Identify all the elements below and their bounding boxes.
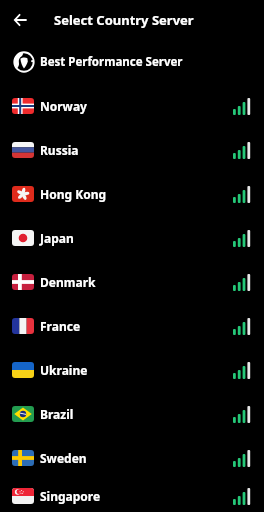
staticText: Best Performance Server [40, 54, 183, 70]
staticText: Japan [40, 230, 74, 246]
button[interactable]: Japan [0, 216, 264, 260]
button[interactable]: Hong Kong [0, 172, 264, 216]
button[interactable]: Denmark [0, 260, 264, 304]
staticText: Brazil [40, 406, 74, 422]
button[interactable]: Best Performance Server [0, 40, 264, 84]
staticText: Select Country Server [54, 11, 194, 29]
staticText: Singapore [40, 488, 101, 504]
button[interactable]: Norway [0, 84, 264, 128]
staticText: Denmark [40, 274, 96, 290]
staticText: France [40, 318, 81, 334]
button[interactable]: Ukraine [0, 348, 264, 392]
button[interactable]: Brazil [0, 392, 264, 436]
staticText: Sweden [40, 450, 87, 466]
staticText: Ukraine [40, 362, 88, 378]
button[interactable]: Sweden [0, 436, 264, 480]
staticText: Russia [40, 142, 79, 158]
staticText: Hong Kong [40, 186, 107, 202]
staticText: Norway [40, 98, 87, 114]
button[interactable] [0, 0, 40, 40]
button[interactable]: France [0, 304, 264, 348]
button[interactable]: Russia [0, 128, 264, 172]
button[interactable]: Singapore [0, 480, 264, 512]
